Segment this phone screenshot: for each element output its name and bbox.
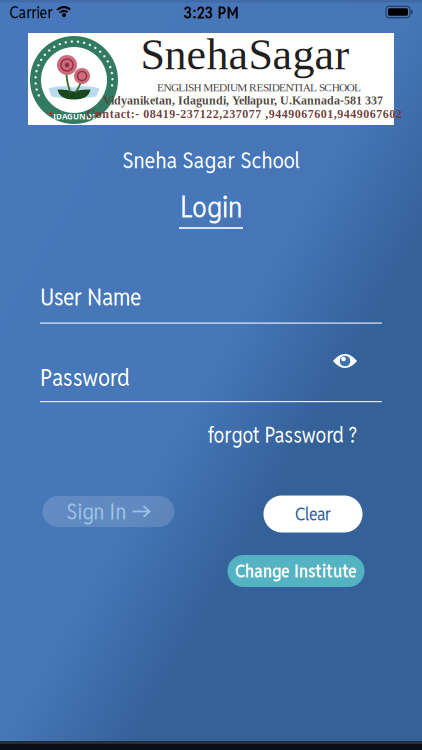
- staticText: Change Institute: [235, 559, 357, 583]
- staticText: Carrier: [9, 2, 52, 23]
- staticText: forgot Password ?: [207, 421, 356, 449]
- staticText: Sneha Sagar School: [122, 145, 299, 175]
- button[interactable]: Sign In: [42, 496, 174, 527]
- staticText: 3:23 PM: [183, 2, 238, 23]
- staticText: Password: [40, 362, 130, 393]
- staticText: Sign In: [66, 497, 126, 526]
- staticText: SnehaSagar: [140, 30, 349, 79]
- button[interactable]: Change Institute: [227, 555, 364, 587]
- staticText: Clear: [295, 502, 331, 526]
- staticText: Vidyaniketan, Idagundi, Yellapur, U.Kann…: [103, 94, 383, 107]
- staticText: User Name: [40, 281, 141, 312]
- staticText: Login: [180, 188, 242, 226]
- button[interactable]: forgot Password ?: [207, 421, 356, 449]
- staticText: ENGLISH MEDIUM RESIDENTIAL SCHOOL: [157, 81, 361, 94]
- staticText: Contact:- 08419-237122,237077 ,944906760…: [86, 107, 402, 121]
- button[interactable]: Password: [40, 362, 382, 402]
- button[interactable]: Clear: [263, 495, 362, 532]
- button[interactable]: User Name: [40, 281, 382, 324]
- staticText: IDAGUNDI: [53, 111, 95, 122]
- button[interactable]: Show password: [333, 354, 357, 367]
